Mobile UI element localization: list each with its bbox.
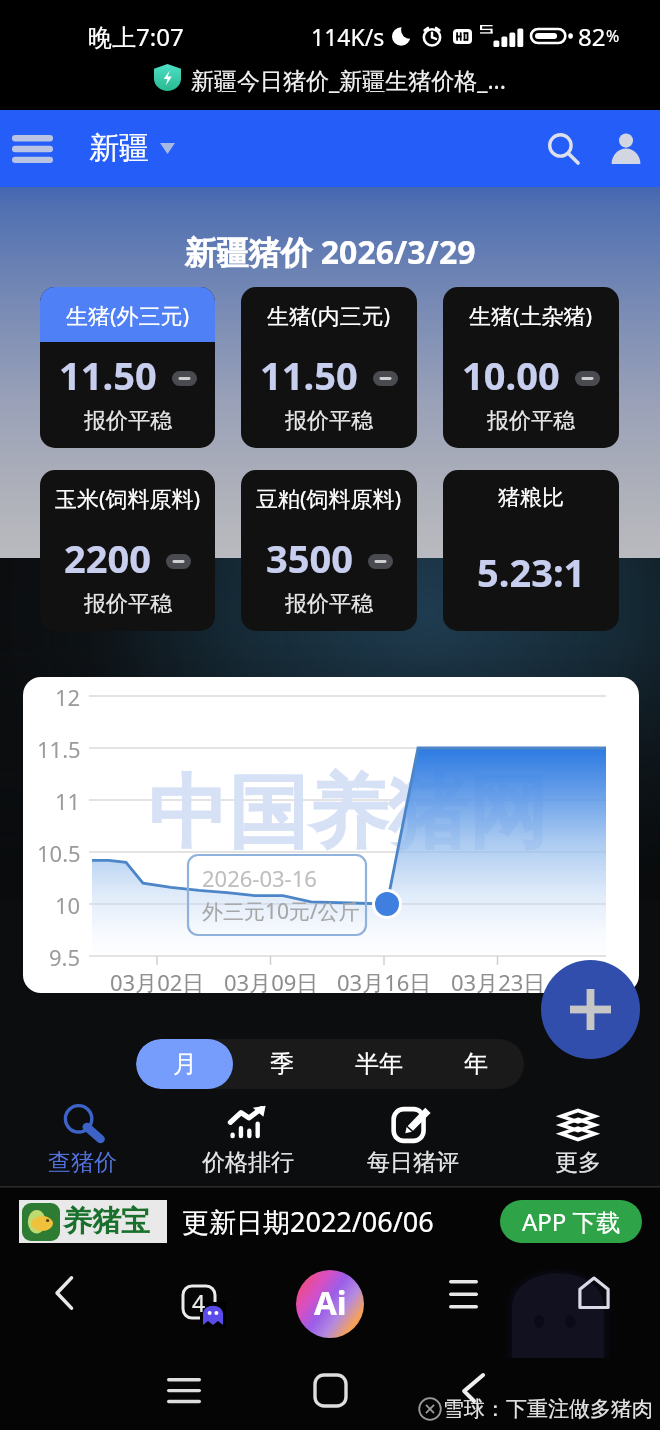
button[interactable]: Home xyxy=(285,1353,375,1427)
staticText: 4 xyxy=(192,1287,206,1318)
staticText: 11.50 xyxy=(260,349,358,401)
staticText: 猪粮比 xyxy=(498,484,564,512)
button[interactable]: 半年 xyxy=(330,1039,427,1089)
staticText: 03月09日 xyxy=(224,967,319,993)
button[interactable]: Menu xyxy=(4,120,60,176)
button[interactable]: 更多 xyxy=(495,1094,660,1186)
staticText: 报价平稳 xyxy=(487,407,575,435)
staticText: 新疆 xyxy=(89,129,149,167)
button[interactable]: AI assistant xyxy=(296,1270,364,1338)
staticText: 03月16日 xyxy=(337,967,432,993)
staticText: 2026-03-16 xyxy=(202,863,317,893)
staticText: 豆粕(饲料原料) xyxy=(256,483,402,513)
button[interactable]: APP 下载 xyxy=(500,1200,642,1243)
staticText: APP 下载 xyxy=(522,1205,621,1238)
staticText: 晚上7:07 xyxy=(88,20,184,53)
staticText: 报价平稳 xyxy=(84,590,172,618)
staticText: 11.50 xyxy=(59,349,157,401)
button[interactable]: 年 xyxy=(427,1039,524,1089)
button[interactable]: 查猪价 xyxy=(0,1094,165,1186)
button[interactable]: 新疆 xyxy=(85,124,179,172)
staticText: 养猪宝 xyxy=(63,1203,150,1240)
staticText: 03月23日 xyxy=(451,967,546,993)
staticText: 半年 xyxy=(355,1049,403,1079)
button[interactable]: 季 xyxy=(233,1039,330,1089)
staticText: 更新日期2022/06/06 xyxy=(182,1203,434,1240)
button[interactable]: 生猪(外三元) xyxy=(40,287,215,448)
button[interactable]: 猪粮比 xyxy=(443,470,619,631)
staticText: 10.5 xyxy=(37,838,81,868)
staticText: 报价平稳 xyxy=(84,407,172,435)
staticText: Ai xyxy=(314,1280,347,1325)
button[interactable]: 生猪(土杂猪) xyxy=(443,287,619,448)
staticText: 11.5 xyxy=(37,734,81,764)
button[interactable]: 生猪(内三元) xyxy=(241,287,417,448)
staticText: 季 xyxy=(270,1049,294,1079)
button[interactable]: 每日猪评 xyxy=(330,1094,495,1186)
staticText: 82 xyxy=(578,20,606,53)
staticText: 查猪价 xyxy=(48,1148,117,1177)
button[interactable]: Menu xyxy=(428,1258,498,1328)
staticText: 生猪(内三元) xyxy=(267,300,391,330)
staticText: 03月02日 xyxy=(110,967,205,993)
staticText: 每日猪评 xyxy=(367,1148,459,1177)
staticText: 3500 xyxy=(266,532,353,584)
staticText: 雪球：下重注做多猪肉 xyxy=(443,1396,653,1422)
button[interactable]: Profile xyxy=(596,118,656,178)
staticText: 年 xyxy=(464,1049,488,1079)
staticText: 2200 xyxy=(64,532,151,584)
button[interactable]: Back xyxy=(30,1258,100,1328)
staticText: 114K/s xyxy=(311,21,385,52)
staticText: 报价平稳 xyxy=(285,407,373,435)
button[interactable]: 价格排行 xyxy=(165,1094,330,1186)
button[interactable]: Add xyxy=(541,960,640,1059)
button[interactable]: Recents xyxy=(139,1353,229,1427)
button[interactable]: Search xyxy=(533,118,593,178)
staticText: 生猪(外三元) xyxy=(66,300,190,330)
staticText: % xyxy=(606,25,620,47)
button[interactable]: 豆粕(饲料原料) xyxy=(241,470,417,631)
button[interactable]: 中国养猪网 xyxy=(23,677,639,993)
staticText: 9.5 xyxy=(49,942,81,972)
button[interactable]: 养猪宝 xyxy=(0,1200,660,1256)
staticText: 10 xyxy=(55,890,81,920)
staticText: 10.00 xyxy=(462,349,560,401)
staticText: 新疆猪价 2026/3/29 xyxy=(184,230,476,274)
staticText: 新疆今日猪价_新疆生猪价格_... xyxy=(191,64,506,95)
staticText: 更多 xyxy=(555,1148,601,1177)
staticText: 生猪(土杂猪) xyxy=(469,300,593,330)
button[interactable]: Home xyxy=(559,1258,629,1328)
staticText: 11 xyxy=(55,786,81,816)
staticText: 报价平稳 xyxy=(285,590,373,618)
staticText: 5.23:1 xyxy=(477,546,586,598)
staticText: 玉米(饲料原料) xyxy=(55,483,201,513)
button[interactable]: 玉米(饲料原料) xyxy=(40,470,215,631)
button[interactable]: 月 xyxy=(136,1039,233,1089)
staticText: 中国养猪网 xyxy=(148,763,548,864)
button[interactable]: Tabs xyxy=(168,1271,234,1337)
button[interactable]: 雪球：下重注做多猪肉 xyxy=(418,1396,653,1422)
staticText: 月 xyxy=(173,1049,197,1079)
staticText: 价格排行 xyxy=(202,1148,294,1177)
staticText: 外三元10元/公斤 xyxy=(202,897,360,926)
staticText: 12 xyxy=(55,682,81,712)
